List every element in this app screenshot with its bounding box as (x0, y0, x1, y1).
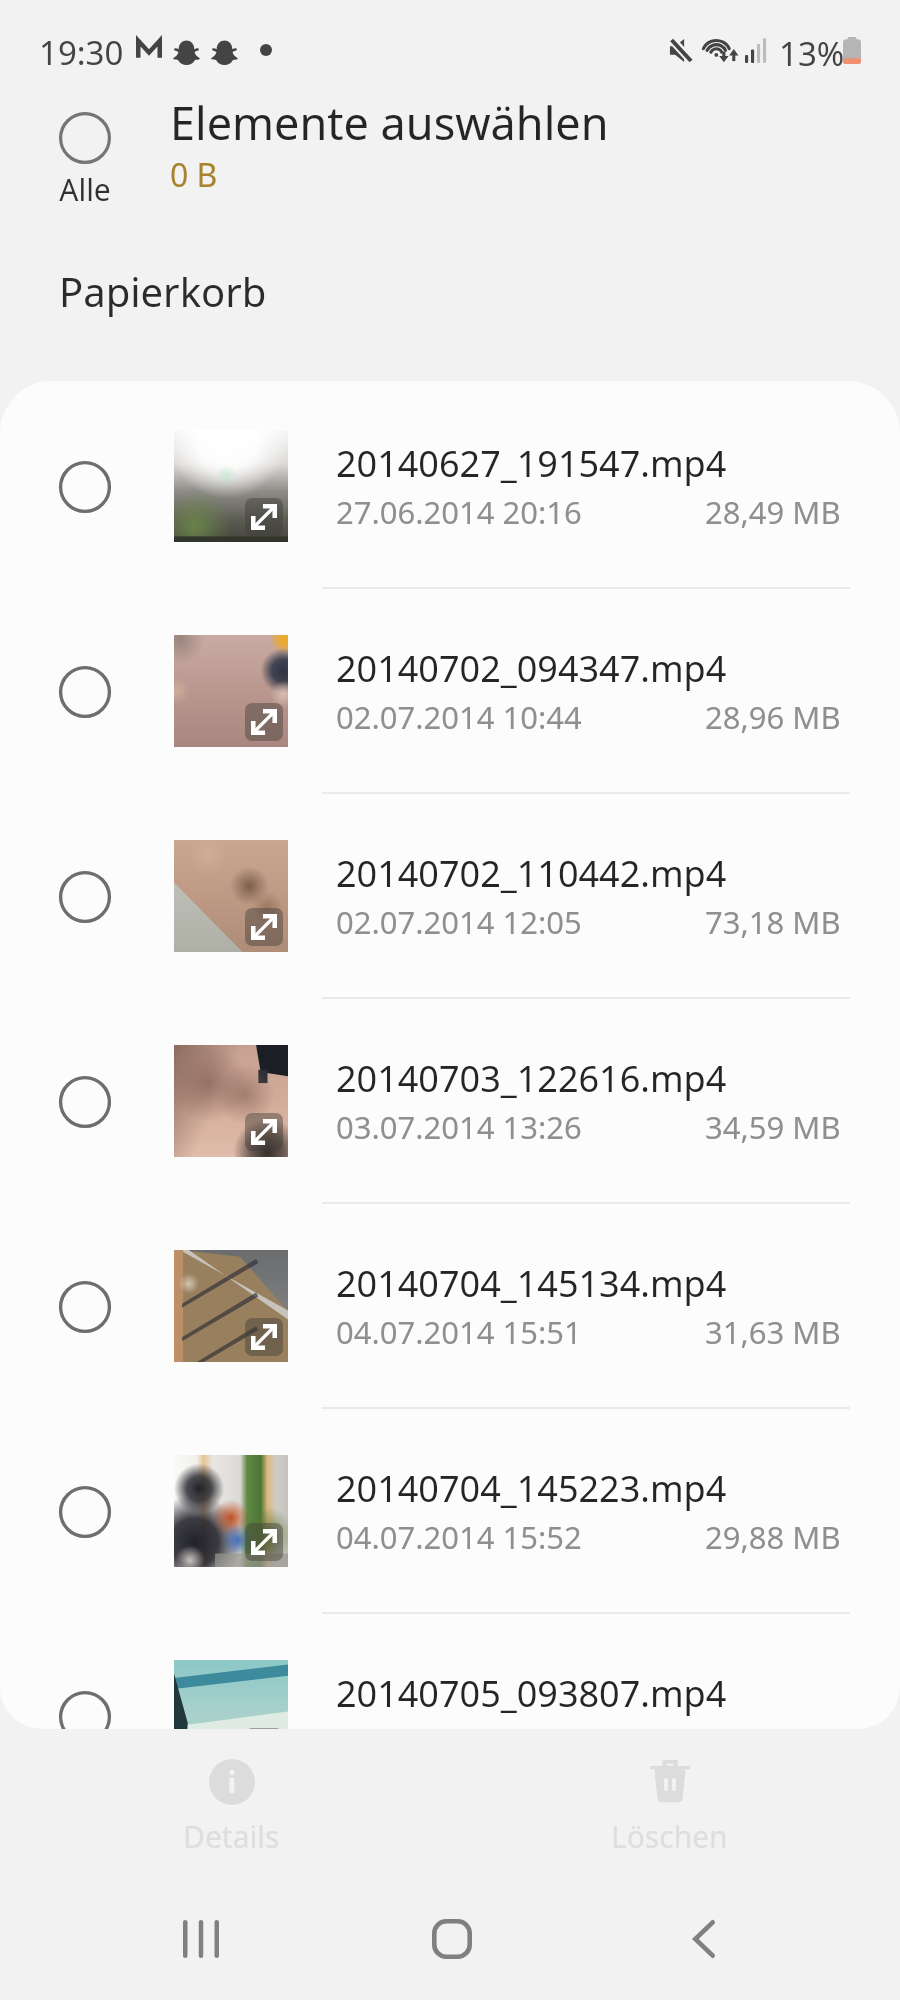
button[interactable]: Vorschau vergrößern (245, 1318, 283, 1356)
button[interactable]: Home (392, 1879, 512, 1999)
staticText: 04.07.2014 15:51 (336, 1311, 582, 1353)
button[interactable]: Auswählen (0, 381, 900, 586)
button[interactable]: Auswählen (0, 1611, 900, 1729)
staticText: 20140627_191547.mp4 (336, 439, 727, 488)
staticText: 20140705_093807.mp4 (336, 1669, 727, 1718)
staticText: 28,49 MB (705, 491, 841, 533)
staticText: 34,59 MB (705, 1106, 841, 1148)
button[interactable]: Auswählen (45, 1267, 125, 1347)
button[interactable]: Details (131, 1739, 331, 1869)
button[interactable]: Auswählen (0, 1406, 900, 1611)
staticText: 20140704_145134.mp4 (336, 1259, 727, 1308)
staticText: 29,88 MB (705, 1516, 841, 1558)
staticText: 04.07.2014 15:52 (336, 1516, 582, 1558)
staticText: 28,96 MB (705, 696, 841, 738)
button[interactable]: Vorschau vergrößern (245, 703, 283, 741)
staticText: 20140702_094347.mp4 (336, 644, 727, 693)
button[interactable]: Vorschau vergrößern (245, 908, 283, 946)
button[interactable]: Back (644, 1879, 764, 1999)
staticText: Alle (59, 169, 111, 210)
button[interactable]: Auswählen (0, 586, 900, 791)
button[interactable]: Vorschau vergrößern (245, 498, 283, 536)
button[interactable]: Vorschau vergrößern (245, 1523, 283, 1561)
staticText: 0 B (170, 153, 218, 197)
button[interactable]: Löschen (569, 1739, 769, 1869)
button[interactable]: Auswählen (45, 1472, 125, 1552)
button[interactable]: Auswählen (45, 857, 125, 937)
button[interactable]: Auswählen (45, 652, 125, 732)
button[interactable]: Auswählen (45, 1677, 125, 1729)
button[interactable]: Auswählen (0, 791, 900, 996)
staticText: 02.07.2014 10:44 (336, 696, 582, 738)
staticText: 20140703_122616.mp4 (336, 1054, 727, 1103)
staticText: Elemente auswählen (170, 92, 609, 153)
staticText: 31,63 MB (705, 1311, 841, 1353)
button[interactable]: Auswählen (0, 1201, 900, 1406)
staticText: 02.07.2014 12:05 (336, 901, 582, 943)
staticText: Details (183, 1816, 280, 1857)
staticText: 19:30 (39, 30, 124, 75)
staticText: 27.06.2014 20:16 (336, 491, 582, 533)
button[interactable]: Recent apps (141, 1879, 261, 1999)
staticText: Löschen (611, 1816, 728, 1857)
button[interactable]: Vorschau vergrößern (245, 1728, 283, 1729)
button[interactable]: Auswählen (45, 1062, 125, 1142)
staticText: 13% (779, 31, 845, 76)
staticText: 73,18 MB (705, 901, 841, 943)
staticText: 20140704_145223.mp4 (336, 1464, 727, 1513)
button[interactable]: Auswählen (45, 447, 125, 527)
staticText: Papierkorb (59, 264, 267, 318)
button[interactable]: Vorschau vergrößern (245, 1113, 283, 1151)
staticText: 03.07.2014 13:26 (336, 1106, 582, 1148)
button[interactable]: Alle auswählen (30, 100, 140, 210)
staticText: 20140702_110442.mp4 (336, 849, 727, 898)
button[interactable]: Auswählen (0, 996, 900, 1201)
